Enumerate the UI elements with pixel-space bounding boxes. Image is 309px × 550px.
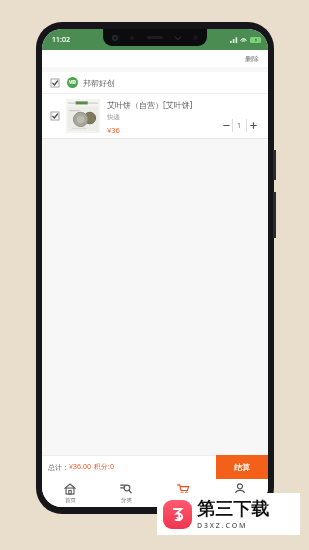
staticText: 快递: [107, 113, 120, 121]
staticText: ¥36.00: [69, 462, 91, 472]
button[interactable]: 删除: [236, 51, 268, 66]
staticText: 删除: [245, 54, 259, 63]
staticText: 11:02: [52, 35, 70, 45]
button[interactable]: 我的: [211, 479, 268, 507]
button[interactable]: 结算: [216, 455, 268, 479]
staticText: 首页: [65, 497, 76, 504]
staticText: 邦帮好创: [83, 78, 115, 88]
button[interactable]: Select item: [42, 94, 268, 138]
staticText: VD: [69, 79, 76, 86]
button[interactable]: Select item: [51, 112, 59, 120]
staticText: 购物车: [174, 497, 191, 504]
staticText: 我的: [234, 497, 245, 504]
staticText: 1: [237, 121, 242, 131]
button[interactable]: Select item: [51, 79, 59, 87]
staticText: 艾叶饼（自营）[艾叶饼]: [107, 99, 193, 110]
button[interactable]: 首页: [42, 479, 98, 507]
staticText: ¥36: [107, 125, 120, 135]
staticText: 结算: [234, 462, 250, 472]
staticText: 总计：: [48, 463, 69, 472]
staticText: 积分:0: [94, 462, 114, 472]
staticText: D 3 X Z . C O M: [197, 521, 246, 531]
button[interactable]: 购物车: [154, 479, 211, 507]
button[interactable]: Select item: [42, 72, 268, 93]
button[interactable]: Decrease quantity: [220, 119, 232, 132]
button[interactable]: Increase quantity: [247, 119, 260, 132]
staticText: 第三下载: [197, 498, 269, 521]
button[interactable]: 分类: [98, 479, 154, 507]
staticText: 分类: [121, 497, 132, 504]
